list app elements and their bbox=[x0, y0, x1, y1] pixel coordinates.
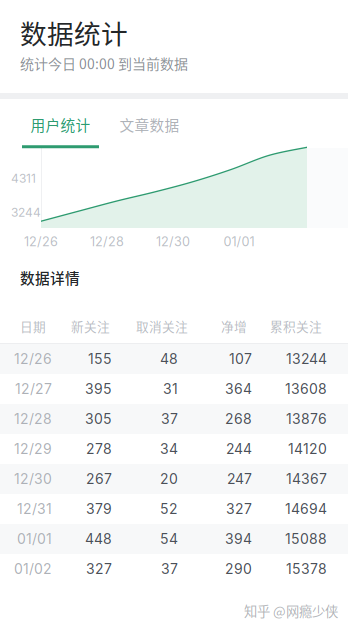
staticText: 37 bbox=[161, 410, 178, 427]
staticText: 395 bbox=[85, 380, 112, 397]
staticText: 12/26 bbox=[24, 234, 58, 249]
staticText: 01/01 bbox=[223, 234, 254, 249]
staticText: 01/01 bbox=[17, 530, 52, 547]
staticText: 取消关注 bbox=[136, 317, 188, 335]
staticText: 155 bbox=[88, 350, 112, 367]
staticText: 用户统计 bbox=[30, 114, 90, 135]
staticText: 394 bbox=[225, 530, 252, 547]
staticText: 4311 bbox=[11, 171, 36, 185]
staticText: 290 bbox=[225, 560, 252, 577]
staticText: 48 bbox=[160, 350, 178, 367]
staticText: 448 bbox=[85, 530, 112, 547]
staticText: 52 bbox=[160, 500, 178, 517]
staticText: 278 bbox=[86, 440, 112, 457]
staticText: 268 bbox=[225, 410, 252, 427]
staticText: 54 bbox=[160, 530, 178, 547]
staticText: 379 bbox=[86, 500, 112, 517]
staticText: 305 bbox=[85, 410, 112, 427]
staticText: 12/30 bbox=[14, 470, 52, 487]
staticText: 14120 bbox=[288, 440, 327, 457]
staticText: 3244 bbox=[11, 205, 41, 219]
staticText: 12/31 bbox=[17, 500, 52, 517]
staticText: 327 bbox=[226, 500, 252, 517]
staticText: 13244 bbox=[286, 350, 327, 367]
staticText: 13608 bbox=[285, 380, 327, 397]
staticText: 15378 bbox=[286, 560, 327, 577]
staticText: 12/27 bbox=[15, 380, 52, 397]
staticText: 新关注 bbox=[71, 317, 110, 335]
staticText: 37 bbox=[161, 560, 178, 577]
staticText: 数据统计 bbox=[20, 13, 128, 52]
staticText: 12/30 bbox=[156, 234, 190, 249]
staticText: 12/28 bbox=[14, 410, 52, 427]
staticText: 267 bbox=[86, 470, 112, 487]
staticText: 107 bbox=[229, 350, 252, 367]
staticText: 日期 bbox=[20, 317, 46, 335]
staticText: 364 bbox=[225, 380, 252, 397]
staticText: 244 bbox=[226, 440, 252, 457]
staticText: 31 bbox=[163, 380, 178, 397]
button[interactable]: 用户统计 bbox=[22, 112, 99, 148]
staticText: 知乎 @网瘾少侠 bbox=[244, 601, 338, 620]
staticText: 文章数据 bbox=[119, 114, 179, 135]
button[interactable]: 文章数据 bbox=[111, 112, 188, 148]
staticText: 净增 bbox=[221, 317, 247, 335]
staticText: 15088 bbox=[285, 530, 327, 547]
staticText: 14694 bbox=[285, 500, 327, 517]
staticText: 12/26 bbox=[14, 350, 52, 367]
staticText: 247 bbox=[227, 470, 252, 487]
staticText: 12/29 bbox=[14, 440, 52, 457]
staticText: 20 bbox=[160, 470, 178, 487]
staticText: 累积关注 bbox=[270, 317, 322, 335]
staticText: 13876 bbox=[286, 410, 327, 427]
staticText: 12/28 bbox=[90, 234, 124, 249]
staticText: 14367 bbox=[286, 470, 327, 487]
staticText: 数据详情 bbox=[20, 267, 80, 288]
staticText: 统计今日 00:00 到当前数据 bbox=[20, 53, 188, 73]
staticText: 01/02 bbox=[14, 560, 52, 577]
staticText: 34 bbox=[160, 440, 178, 457]
staticText: 327 bbox=[86, 560, 112, 577]
